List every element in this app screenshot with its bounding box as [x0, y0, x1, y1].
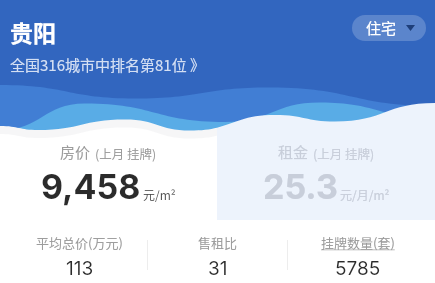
staticText: 售租比	[198, 233, 238, 252]
staticText: 5785	[335, 257, 381, 280]
staticText: 平均总价(万元)	[36, 233, 123, 252]
other: 展开筛选	[406, 25, 415, 31]
staticText: 租金	[278, 141, 309, 163]
button[interactable]: 平均总价(万元)	[0, 233, 147, 280]
staticText: 25.3	[263, 166, 338, 207]
button[interactable]: 售租比	[147, 233, 287, 280]
button[interactable]: 住宅	[352, 15, 426, 41]
staticText: 31	[208, 257, 228, 280]
staticText: 房价	[60, 141, 91, 163]
button[interactable]: 租金	[217, 141, 435, 207]
staticText: 贵阳	[10, 15, 56, 48]
staticText: 9,458	[41, 166, 141, 207]
staticText: 元/m²	[143, 186, 176, 203]
button[interactable]: 挂牌数量(套)	[287, 233, 435, 280]
staticText: 113	[66, 257, 94, 280]
staticText: (上月 挂牌)	[95, 144, 157, 162]
button[interactable]: 房价	[0, 141, 217, 207]
staticText: 住宅	[366, 17, 397, 39]
staticText: 全国316城市中排名第81位 》	[10, 54, 205, 76]
staticText: 元/月/m²	[340, 186, 390, 203]
staticText: (上月 挂牌)	[313, 144, 375, 162]
staticText: 挂牌数量(套)	[321, 233, 395, 252]
